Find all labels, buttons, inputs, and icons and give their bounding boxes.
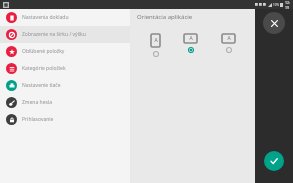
staticText: Zmena hesla (22, 99, 52, 106)
button[interactable]: Prihlasovanie (0, 111, 130, 128)
button[interactable]: Nastavenie tlače (0, 77, 130, 94)
staticText: A (189, 35, 193, 42)
staticText: 12:19 (285, 0, 291, 9)
button[interactable]: Orientation PORTRAIT (147, 30, 164, 61)
button[interactable]: Nastavenia dokladu (0, 9, 130, 26)
button[interactable]: Orientation LANDSCAPE (180, 30, 201, 57)
button[interactable]: Zmena hesla (0, 94, 130, 111)
staticText: Kategórie položiek (22, 65, 66, 72)
staticText: Prihlasovanie (22, 116, 54, 123)
staticText: 10% (273, 3, 279, 7)
staticText: A (227, 35, 231, 42)
staticText: Nastavenie tlače (22, 82, 61, 89)
button[interactable]: Orientation REVERSE (218, 30, 239, 57)
staticText: Nastavenia dokladu (22, 14, 69, 21)
button[interactable]: Kategórie položiek (0, 60, 130, 77)
button[interactable]: Zobrazenie na šírku / výšku (0, 26, 130, 43)
button[interactable]: Close (263, 12, 285, 34)
staticText: Obľúbené položky (22, 48, 65, 55)
button[interactable]: Confirm (264, 151, 284, 171)
staticText: Orientácia aplikácie (137, 13, 193, 21)
staticText: Zobrazenie na šírku / výšku (22, 31, 86, 38)
staticText: A (154, 37, 158, 44)
button[interactable]: Obľúbené položky (0, 43, 130, 60)
